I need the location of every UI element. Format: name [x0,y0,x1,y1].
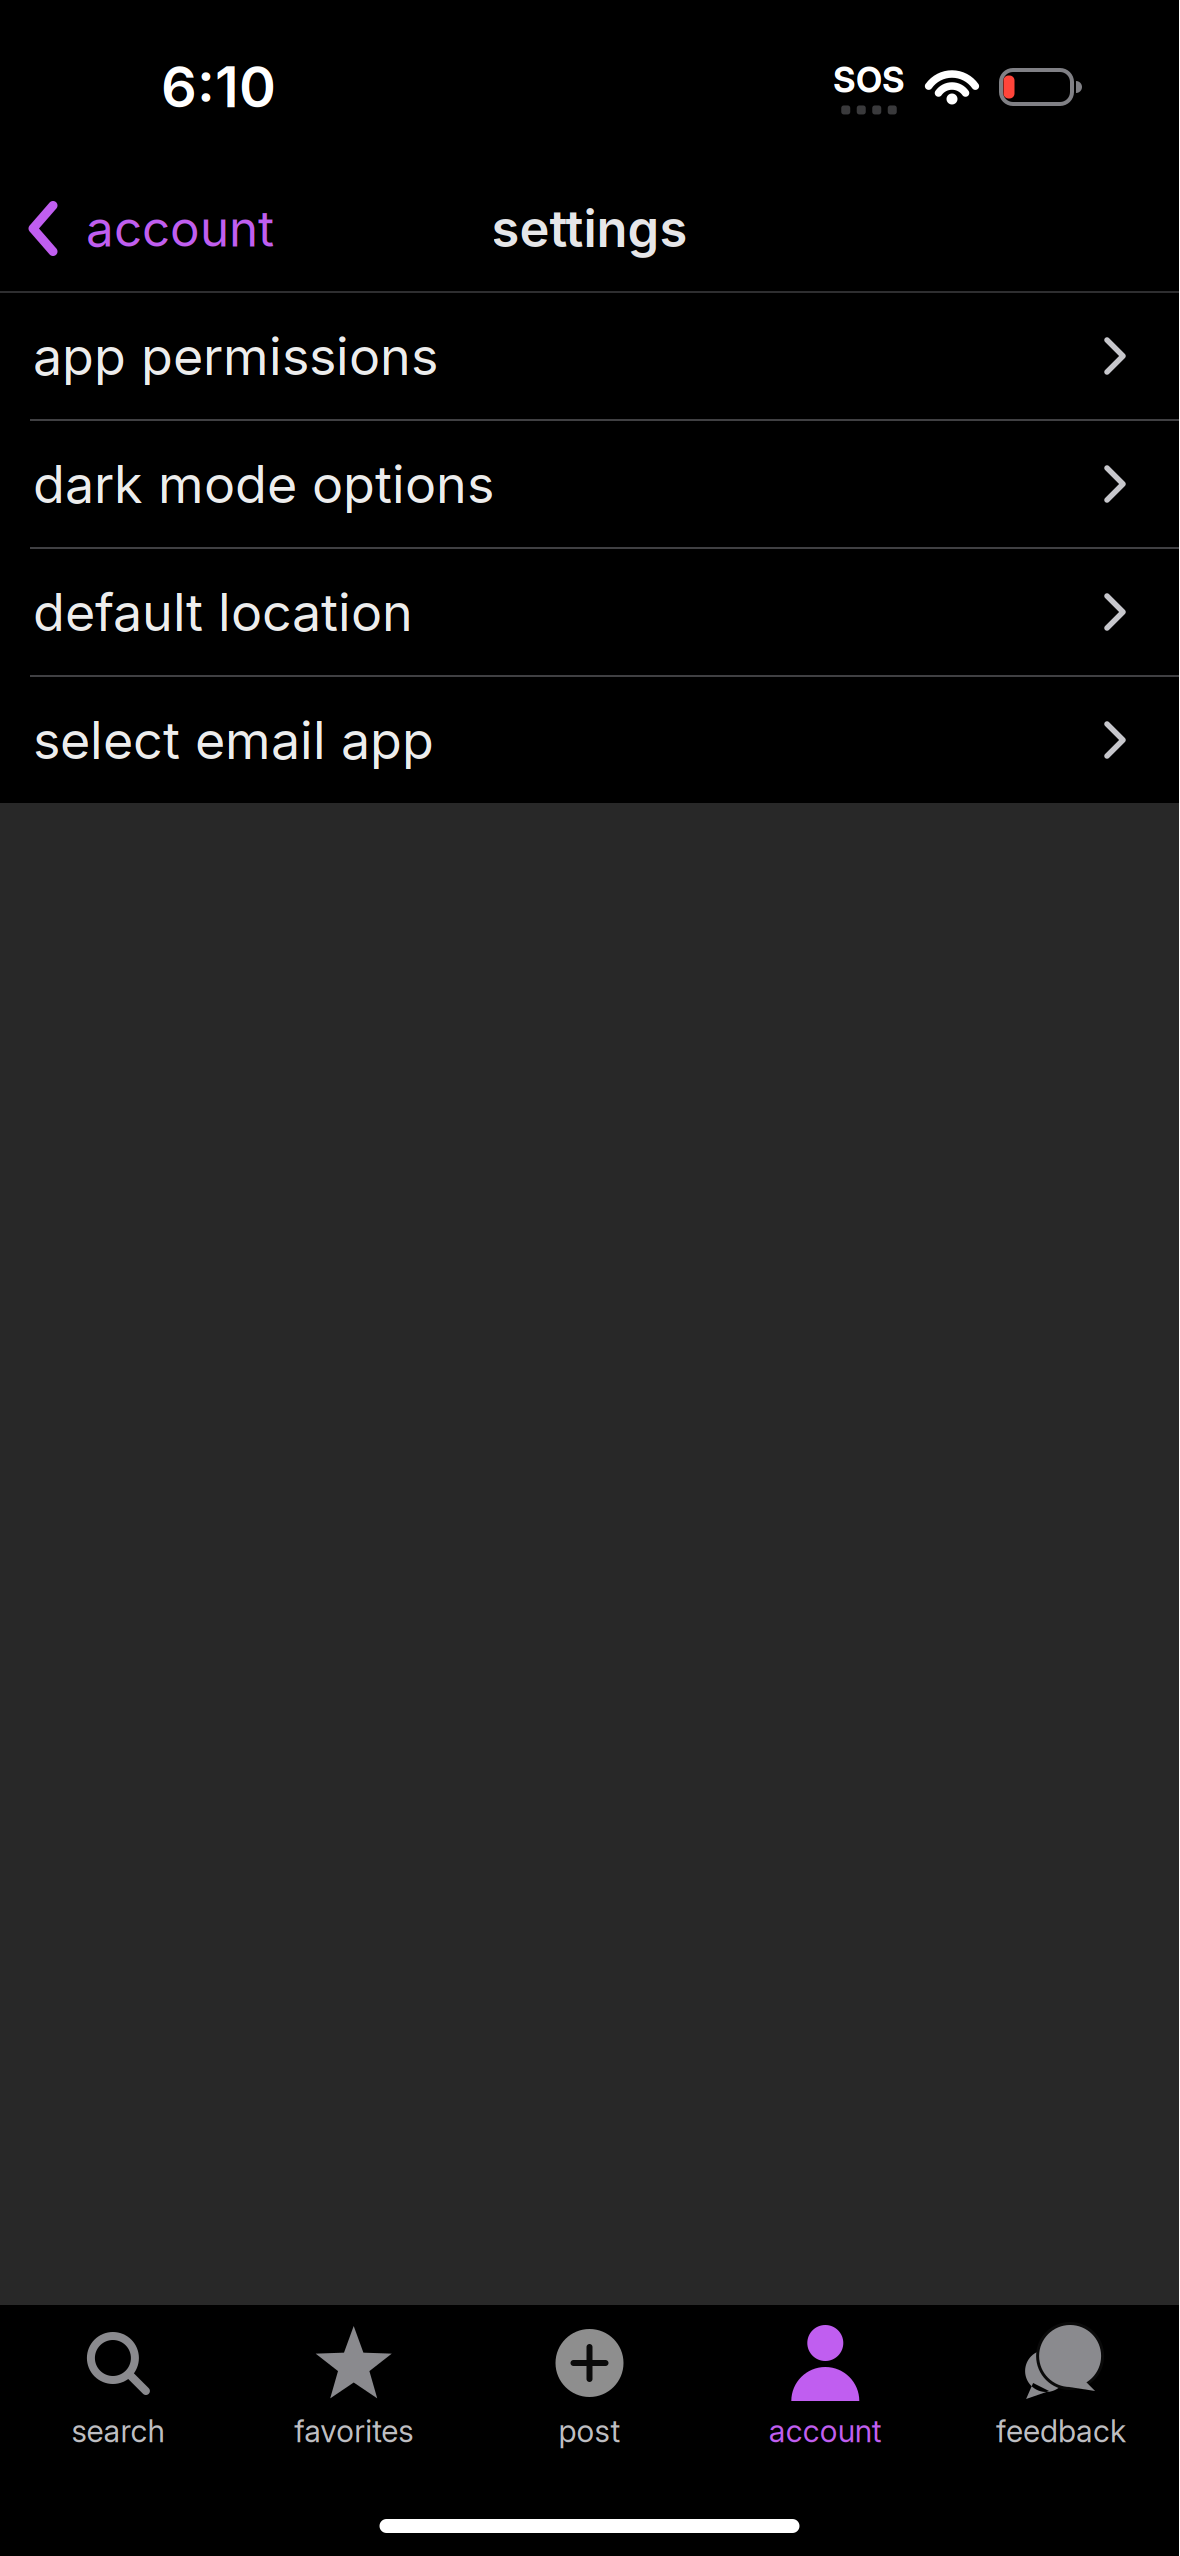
button[interactable]: Back to account [0,199,274,258]
button[interactable]: account [707,2325,943,2449]
button[interactable]: app permissions [0,293,1179,419]
staticText: account [86,199,274,258]
staticText: search [71,2413,164,2449]
button[interactable]: search [0,2325,236,2449]
staticText: 6:10 [161,54,276,120]
staticText: feedback [996,2413,1126,2449]
staticText: settings [491,199,687,258]
button[interactable]: select email app [0,677,1179,803]
staticText: SOS [833,60,905,100]
staticText: select email app [33,709,434,771]
button[interactable]: post [472,2325,707,2449]
button[interactable]: dark mode options [0,421,1179,547]
button[interactable]: favorites [236,2325,472,2449]
staticText: account [769,2413,882,2449]
button[interactable]: default location [0,549,1179,675]
button[interactable]: feedback [943,2325,1179,2449]
staticText: app permissions [33,325,438,387]
staticText: post [558,2413,620,2449]
staticText: default location [33,581,413,643]
staticText: favorites [294,2413,413,2449]
staticText: dark mode options [33,453,494,515]
